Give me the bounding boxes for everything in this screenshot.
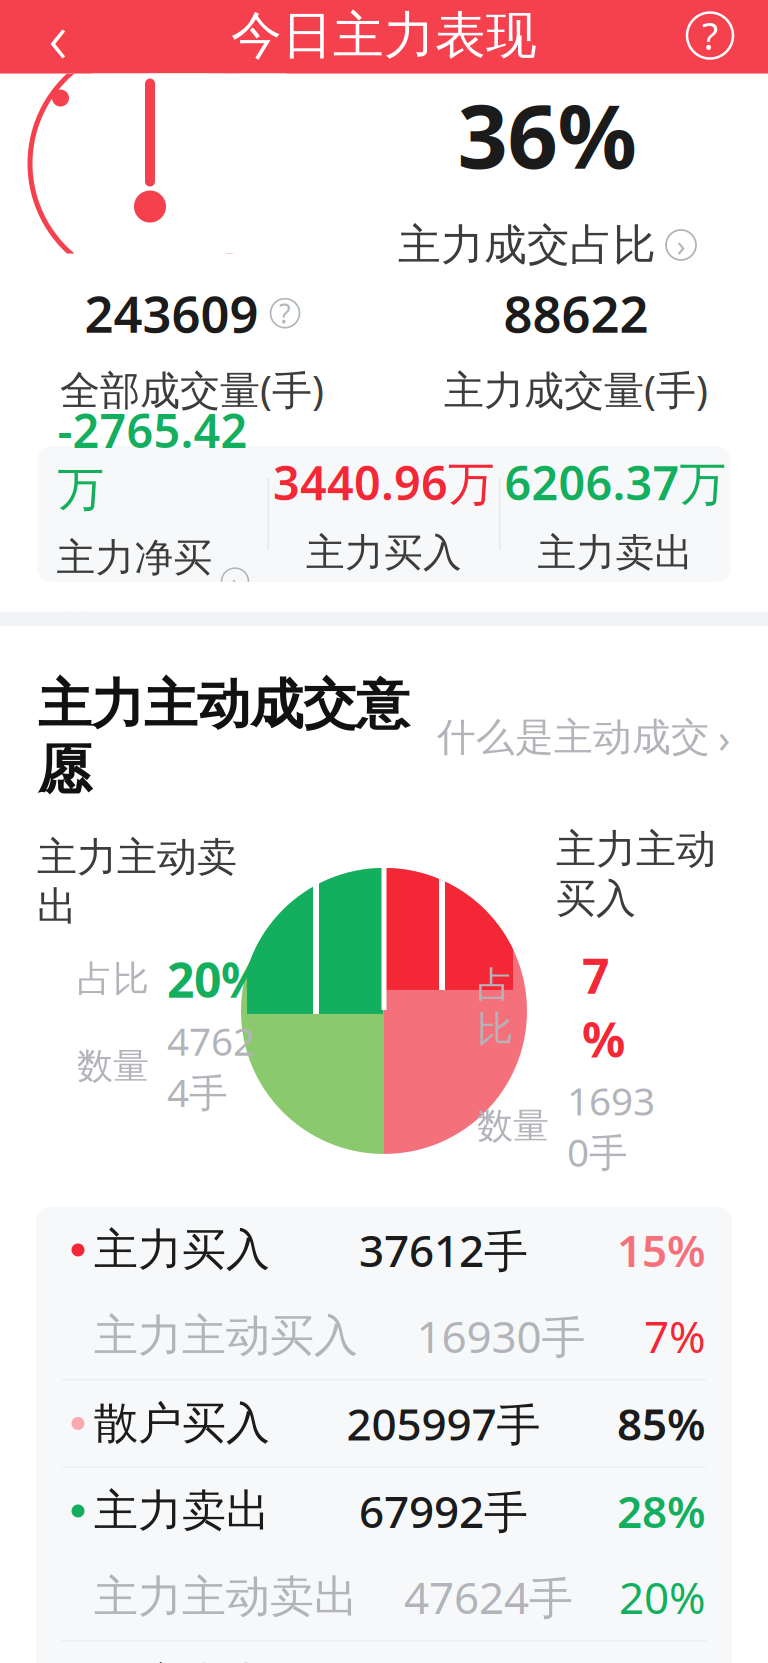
button[interactable]: 主力主动卖出 (36, 1554, 732, 1640)
staticText: 主力主动卖出 (37, 833, 237, 931)
staticText: 67992手 (359, 1482, 528, 1540)
staticText: 88622 (503, 279, 648, 347)
button[interactable]: 主力主动买入 (36, 1293, 732, 1379)
button[interactable]: 3440.96万 (269, 446, 499, 582)
staticText: 243609 (84, 279, 258, 347)
staticText: 主力卖出 (94, 1484, 270, 1538)
staticText: 主力主动成交意愿 (38, 672, 409, 803)
button[interactable]: 主力卖出 (36, 1468, 732, 1554)
button[interactable]: 帮助 (668, 0, 752, 73)
staticText: 3440.96万 (273, 451, 495, 513)
staticText: 主力主动卖出 (94, 1570, 358, 1624)
staticText: 47624手 (404, 1568, 573, 1626)
staticText: › (718, 711, 730, 764)
staticText: 主力买入 (306, 529, 462, 577)
staticText: 15% (617, 1221, 706, 1279)
staticText: 什么是主动成交 (437, 714, 710, 761)
button[interactable]: 成交量说明 (270, 299, 299, 328)
staticText: 主力主动买入 (556, 825, 716, 923)
staticText: 主力买入 (94, 1223, 270, 1277)
staticText: 205997手 (346, 1394, 540, 1453)
staticText: 主力成交占比 (398, 219, 656, 271)
staticText: ‹ (48, 0, 67, 83)
staticText: 37612手 (359, 1221, 528, 1279)
staticText: 占比 (477, 963, 513, 1051)
staticText: -2765.42万 (57, 399, 247, 518)
staticText: 36% (457, 76, 636, 193)
staticText: ? (279, 295, 291, 331)
staticText: › (231, 566, 238, 598)
staticText: 主力成交量(手) (444, 363, 708, 416)
button[interactable]: 主力成交占比 (398, 219, 696, 271)
staticText: 16930手 (567, 1075, 655, 1177)
staticText: 47624手 (167, 1015, 255, 1118)
button[interactable]: 什么是主动成交 (437, 711, 730, 764)
staticText: 85% (617, 1394, 706, 1453)
staticText: 数量 (477, 1104, 549, 1148)
button[interactable]: 主力买入 (36, 1207, 732, 1293)
staticText: 主力主动买入 (94, 1309, 358, 1363)
staticText: 16930手 (416, 1307, 585, 1365)
staticText: 7% (582, 943, 625, 1071)
staticText: 散户买入 (94, 1396, 270, 1450)
staticText: 数量 (77, 1044, 149, 1088)
staticText: 占比 (77, 957, 149, 1001)
staticText: 20% (167, 947, 264, 1011)
staticText: 主力卖出 (537, 529, 693, 577)
staticText: 主力净买入 (56, 534, 212, 629)
staticText: 今日主力表现 (231, 4, 537, 67)
staticText: 散户卖出 (94, 1657, 270, 1663)
staticText: 20% (619, 1568, 706, 1626)
staticText: 7% (644, 1307, 706, 1365)
staticText: 6206.37万 (504, 451, 726, 513)
staticText: › (676, 225, 685, 264)
button[interactable]: -2765.42万 (37, 446, 267, 582)
button[interactable]: 散户买入 (36, 1380, 732, 1466)
staticText: 全部成交量(手) (60, 363, 324, 416)
staticText: 28% (617, 1482, 706, 1540)
staticText: ? (702, 11, 718, 60)
button[interactable]: 返回 (16, 0, 100, 73)
button[interactable]: 6206.37万 (500, 446, 730, 582)
